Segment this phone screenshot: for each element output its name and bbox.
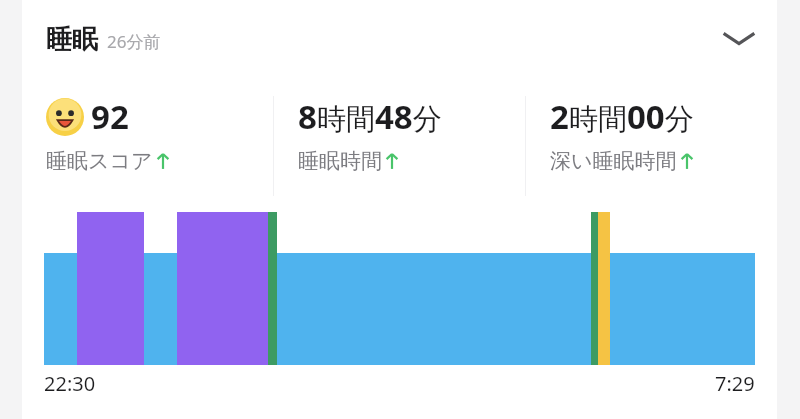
button[interactable]: 2時間00分 [526,90,777,174]
button[interactable]: Collapse [715,15,763,63]
staticText: 深い睡眠時間 [550,148,677,174]
staticText: 7:29 [715,370,755,397]
staticText: 8時間48分 [298,94,442,139]
staticText: 26分前 [107,30,161,53]
staticText: 睡眠スコア [46,148,153,174]
staticText: 睡眠時間 [298,148,382,174]
staticText: 睡眠 [46,23,98,56]
staticText: 22:30 [44,370,96,397]
button[interactable]: 睡眠 [22,0,777,78]
staticText: 92 [91,94,129,139]
button[interactable]: 92 [22,90,273,174]
staticText: 2時間00分 [550,94,694,139]
button[interactable]: 8時間48分 [274,90,525,174]
